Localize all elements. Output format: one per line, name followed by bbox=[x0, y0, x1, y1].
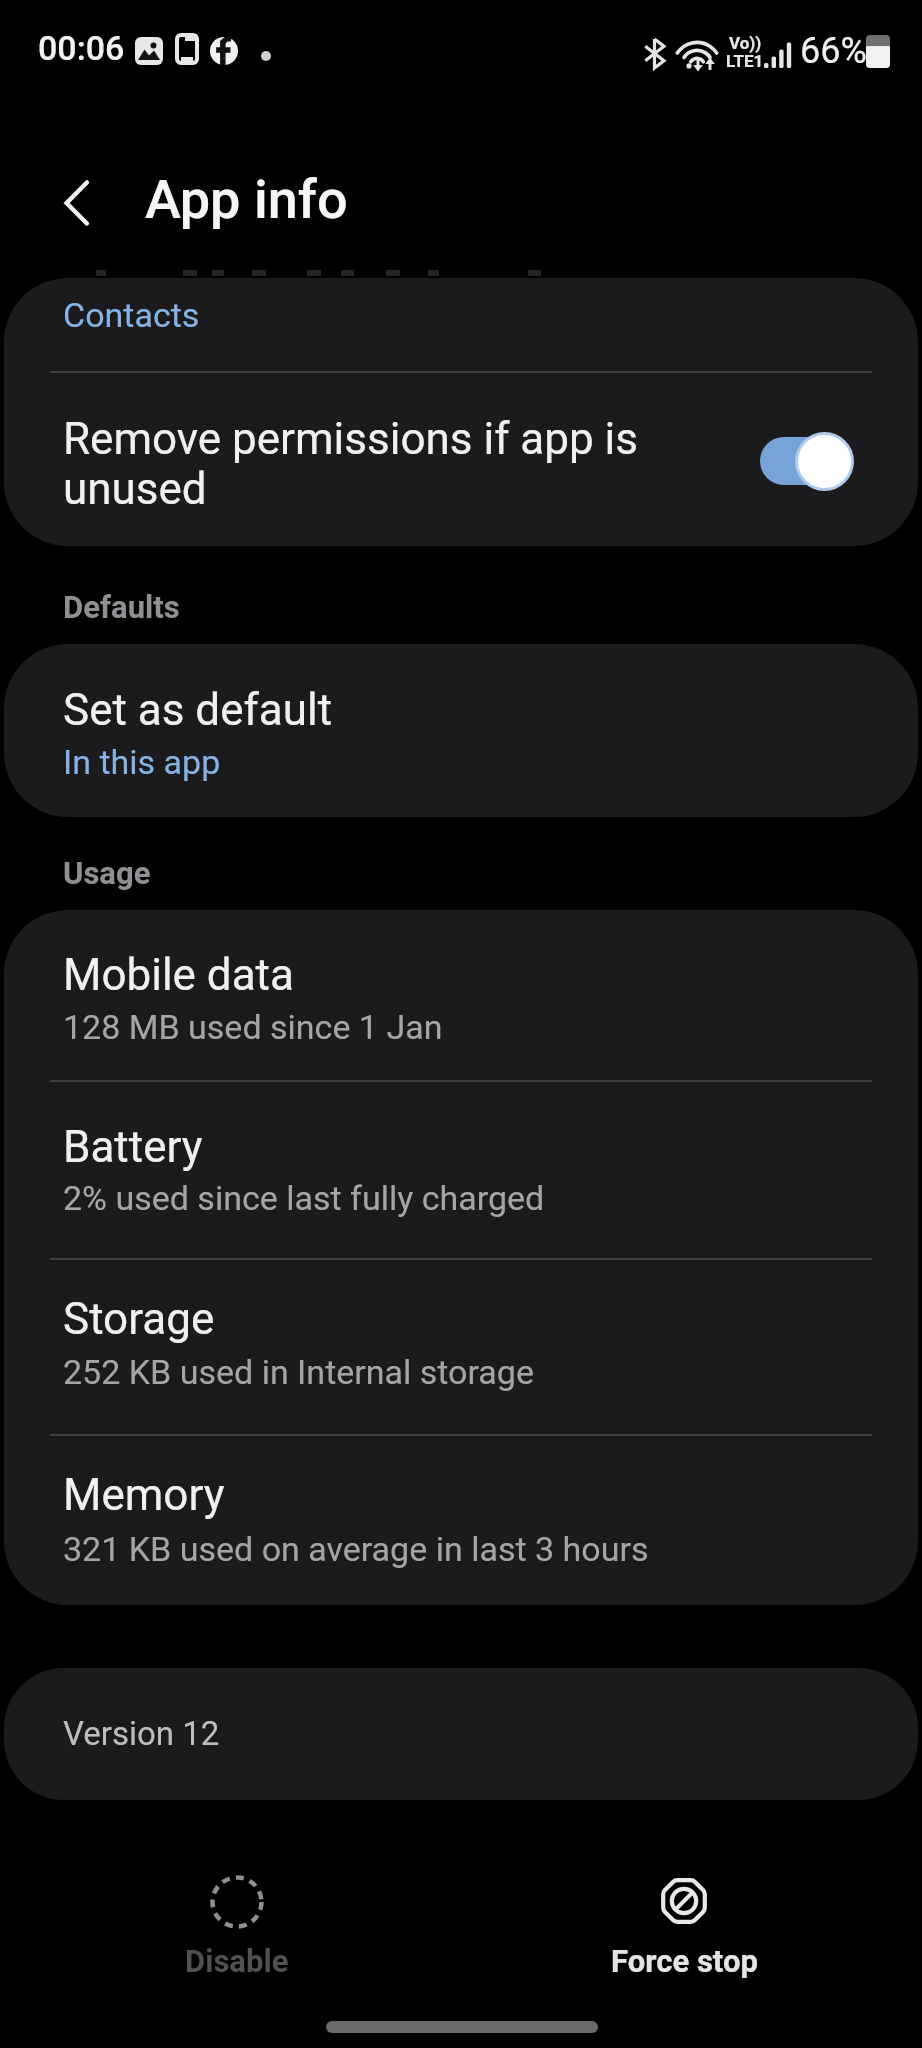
staticText: Storage bbox=[63, 1293, 215, 1345]
button[interactable] bbox=[4, 910, 918, 1080]
staticText: Remove permissions if app is unused bbox=[63, 413, 723, 514]
button[interactable]: Disable bbox=[117, 1860, 357, 2000]
staticText: Defaults bbox=[63, 589, 180, 625]
staticText: Usage bbox=[63, 855, 151, 891]
button[interactable]: Force stop bbox=[564, 1860, 804, 2000]
button[interactable] bbox=[4, 1082, 918, 1252]
staticText: In this app bbox=[63, 742, 221, 782]
staticText: Memory bbox=[63, 1469, 225, 1521]
button[interactable] bbox=[4, 644, 918, 817]
staticText: Mobile data bbox=[63, 949, 294, 1001]
staticText: 321 KB used on average in last 3 hours bbox=[63, 1529, 649, 1569]
staticText: Disable bbox=[185, 1943, 289, 1979]
button[interactable] bbox=[760, 437, 852, 485]
button[interactable] bbox=[4, 278, 918, 372]
staticText: 2% used since last fully charged bbox=[63, 1178, 545, 1218]
staticText: LTE1 bbox=[726, 51, 764, 71]
staticText: Force stop bbox=[611, 1943, 758, 1979]
staticText: 66% bbox=[800, 30, 867, 72]
button[interactable] bbox=[4, 373, 918, 546]
staticText: 00:06 bbox=[38, 28, 125, 68]
staticText: Set as default bbox=[63, 684, 333, 736]
staticText: App info bbox=[145, 168, 348, 231]
button[interactable] bbox=[4, 1260, 918, 1430]
staticText: 252 KB used in Internal storage bbox=[63, 1352, 534, 1392]
staticText: Contacts bbox=[63, 295, 200, 335]
button[interactable] bbox=[30, 165, 130, 245]
staticText: Version 12 bbox=[63, 1714, 220, 1753]
staticText: Battery bbox=[63, 1121, 203, 1173]
staticText: Vo)) bbox=[729, 33, 762, 53]
staticText: 128 MB used since 1 Jan bbox=[63, 1007, 443, 1047]
button[interactable] bbox=[4, 1436, 918, 1606]
